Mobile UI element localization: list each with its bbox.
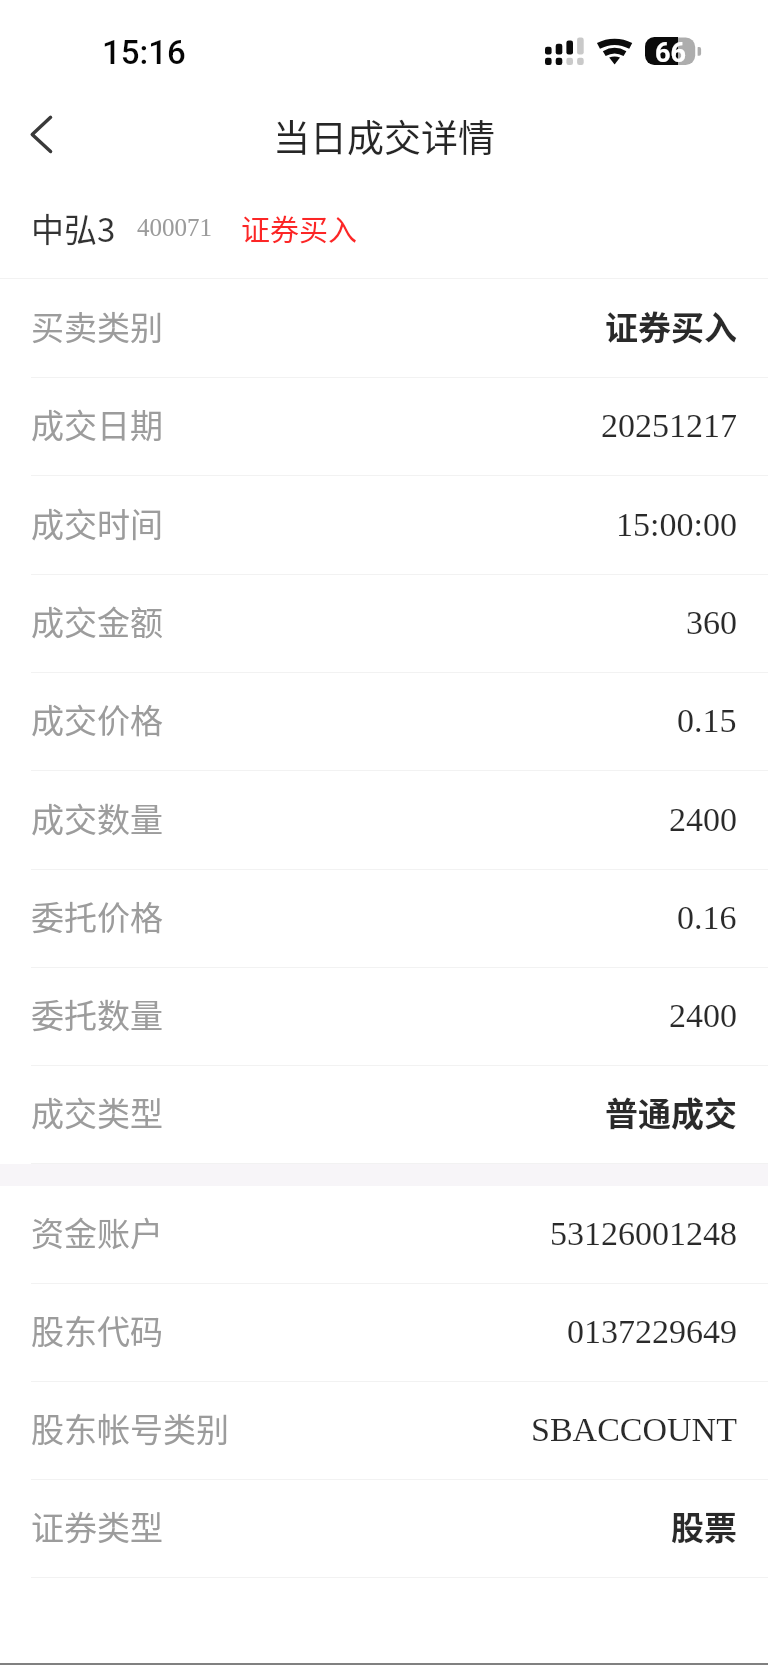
staticText: 400071 (137, 214, 212, 242)
staticText: 0.15 (677, 702, 737, 740)
button[interactable]: 资金账户 (0, 1186, 768, 1284)
button[interactable]: 成交日期 (0, 378, 768, 476)
staticText: 委托数量 (31, 990, 163, 1038)
staticText: 股票 (671, 1502, 737, 1550)
button[interactable]: 委托价格 (0, 870, 768, 968)
staticText: 2400 (669, 997, 737, 1035)
staticText: 成交数量 (31, 794, 163, 842)
button[interactable]: 买卖类别 (0, 279, 768, 378)
staticText: 成交时间 (31, 499, 163, 547)
button[interactable]: 成交类型 (0, 1066, 768, 1164)
staticText: 证券买入 (241, 207, 358, 249)
staticText: 证券买入 (605, 302, 737, 350)
staticText: 委托价格 (31, 892, 163, 940)
button[interactable]: 成交时间 (0, 476, 768, 575)
staticText: 53126001248 (550, 1215, 737, 1253)
staticText: 成交价格 (31, 695, 163, 743)
staticText: 股东帐号类别 (31, 1404, 229, 1452)
staticText: 资金账户 (31, 1208, 163, 1256)
staticText: 66 (655, 37, 686, 65)
staticText: 普通成交 (605, 1088, 737, 1136)
staticText: 15:00:00 (616, 506, 737, 544)
button[interactable]: 成交金额 (0, 575, 768, 673)
button[interactable]: 成交价格 (0, 673, 768, 771)
staticText: 当日成交详情 (273, 109, 495, 163)
staticText: SBACCOUNT (531, 1411, 737, 1449)
staticText: 15:16 (102, 33, 186, 72)
staticText: 成交类型 (31, 1088, 163, 1136)
staticText: 中弘3 (31, 204, 116, 252)
button[interactable]: 股东帐号类别 (0, 1382, 768, 1480)
staticText: 20251217 (601, 407, 737, 445)
button[interactable]: 成交数量 (0, 771, 768, 870)
staticText: 0.16 (677, 899, 737, 937)
staticText: 股东代码 (31, 1306, 163, 1354)
staticText: 成交金额 (31, 597, 163, 645)
staticText: 0137229649 (567, 1313, 737, 1351)
staticText: 证券类型 (31, 1502, 163, 1550)
staticText: 成交日期 (31, 400, 163, 448)
staticText: 360 (686, 604, 737, 642)
staticText: 2400 (669, 801, 737, 839)
button[interactable]: Back (0, 92, 82, 184)
button[interactable]: 证券类型 (0, 1480, 768, 1578)
button[interactable]: 委托数量 (0, 968, 768, 1066)
staticText: 买卖类别 (31, 302, 163, 350)
button[interactable]: 股东代码 (0, 1284, 768, 1382)
